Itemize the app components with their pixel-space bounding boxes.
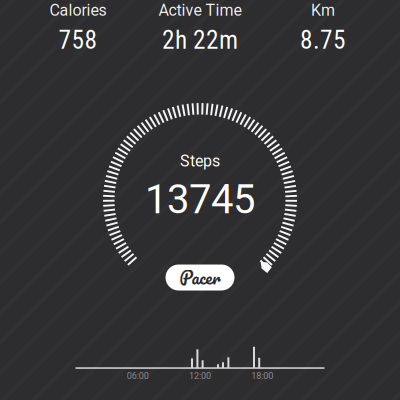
staticText: 06:00 (127, 370, 149, 381)
staticText: Active Time (158, 1, 241, 20)
staticText: Pacer (179, 263, 220, 292)
staticText: 758 (58, 25, 97, 55)
staticText: 18:00 (251, 370, 273, 381)
staticText: 8.75 (300, 25, 346, 55)
staticText: 2h 22m (162, 25, 238, 55)
button[interactable]: Pacer (165, 264, 234, 290)
staticText: Steps (180, 152, 220, 170)
staticText: Calories (49, 1, 106, 20)
staticText: 13745 (145, 176, 255, 223)
staticText: Km (311, 1, 335, 20)
staticText: 12:00 (189, 370, 211, 381)
